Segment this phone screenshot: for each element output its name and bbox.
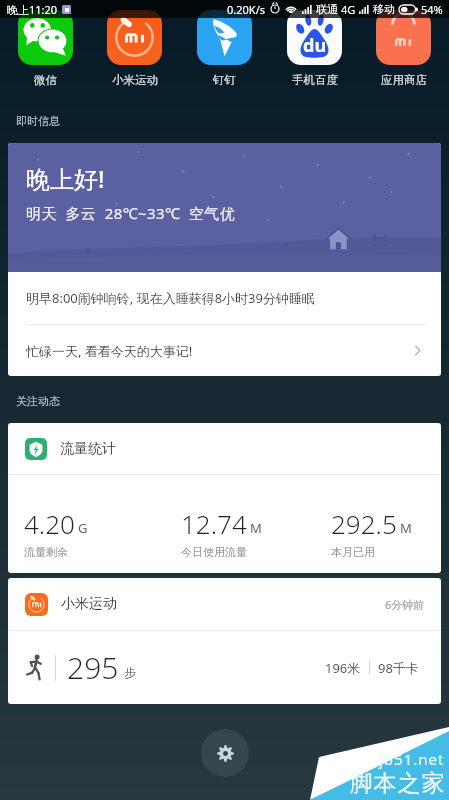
staticText: 步: [124, 665, 136, 680]
staticText: 0.20K/s: [227, 2, 265, 17]
staticText: 即时信息: [16, 114, 60, 128]
staticText: 明天 多云 28℃~33℃ 空气优: [26, 203, 236, 223]
button[interactable]: 小米运动: [8, 578, 441, 704]
button[interactable]: 忙碌一天, 看看今天的大事记!: [8, 325, 441, 376]
button[interactable]: 钉钉: [180, 0, 269, 96]
staticText: 晚上好!: [26, 162, 105, 195]
staticText: 明早8:00闹钟响铃, 现在入睡获得8小时39分钟睡眠: [26, 289, 315, 307]
button[interactable]: 小米运动: [90, 0, 179, 96]
staticText: 钉钉: [213, 73, 236, 87]
staticText: 手机百度: [292, 73, 338, 87]
staticText: jb51.net: [379, 749, 445, 769]
staticText: 54%: [421, 2, 443, 17]
button[interactable]: du: [270, 0, 359, 96]
staticText: 小米运动: [112, 73, 158, 87]
staticText: du: [303, 33, 327, 58]
staticText: 4G: [341, 2, 356, 17]
staticText: 关注动态: [16, 394, 60, 408]
staticText: 98千卡: [378, 659, 419, 677]
staticText: G: [78, 519, 88, 537]
staticText: 流量统计: [60, 440, 116, 458]
button[interactable]: 微信: [1, 0, 90, 96]
staticText: 应用商店: [381, 73, 427, 87]
staticText: 晚上11:20: [7, 2, 58, 17]
button[interactable]: 晚上好!: [8, 143, 441, 376]
staticText: M: [400, 519, 412, 537]
staticText: 本月已用: [331, 545, 375, 559]
staticText: 6分钟前: [385, 597, 425, 612]
staticText: 流量剩余: [24, 545, 68, 559]
staticText: 4.20: [24, 506, 75, 541]
staticText: 295: [67, 647, 119, 688]
staticText: 196米: [325, 659, 361, 677]
staticText: 忙碌一天, 看看今天的大事记!: [26, 342, 193, 360]
staticText: 微信: [34, 73, 57, 87]
button[interactable]: 流量统计: [8, 423, 441, 573]
staticText: 移动: [373, 2, 395, 16]
staticText: 小米运动: [61, 595, 117, 613]
button[interactable]: 应用商店: [359, 0, 448, 96]
staticText: M: [250, 519, 262, 537]
button[interactable]: Settings: [201, 729, 249, 777]
staticText: 脚本之家: [349, 769, 445, 798]
staticText: 292.5: [331, 506, 397, 541]
staticText: 12.74: [181, 506, 247, 541]
staticText: 联通: [316, 2, 338, 16]
staticText: 今日使用流量: [181, 545, 247, 559]
